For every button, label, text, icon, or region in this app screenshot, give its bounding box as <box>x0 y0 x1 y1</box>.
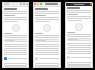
button[interactable] <box>4 39 27 42</box>
button[interactable] <box>67 62 91 65</box>
button[interactable] <box>4 17 27 20</box>
button[interactable] <box>67 38 91 41</box>
button[interactable] <box>35 11 59 14</box>
button[interactable]: Profile <box>90 3 92 5</box>
button[interactable] <box>67 10 91 13</box>
button[interactable] <box>35 44 59 47</box>
button[interactable] <box>35 52 59 55</box>
button[interactable] <box>67 43 91 46</box>
button[interactable] <box>67 16 91 19</box>
button[interactable]: Submit <box>4 57 7 60</box>
button[interactable] <box>35 63 59 66</box>
button[interactable] <box>4 63 27 66</box>
button[interactable] <box>67 47 91 50</box>
button[interactable]: Address bar <box>3 3 10 5</box>
button[interactable] <box>35 48 59 51</box>
button[interactable] <box>67 65 91 67</box>
button[interactable] <box>67 34 91 37</box>
button[interactable] <box>4 52 27 55</box>
button[interactable] <box>35 39 59 42</box>
button[interactable]: Window title <box>45 3 58 5</box>
button[interactable] <box>4 48 27 51</box>
button[interactable] <box>35 35 59 38</box>
button[interactable] <box>4 35 27 38</box>
button[interactable] <box>4 11 27 14</box>
button[interactable]: Address bar <box>71 3 87 5</box>
button[interactable] <box>4 44 27 47</box>
button[interactable] <box>35 17 59 20</box>
button[interactable] <box>67 51 91 54</box>
